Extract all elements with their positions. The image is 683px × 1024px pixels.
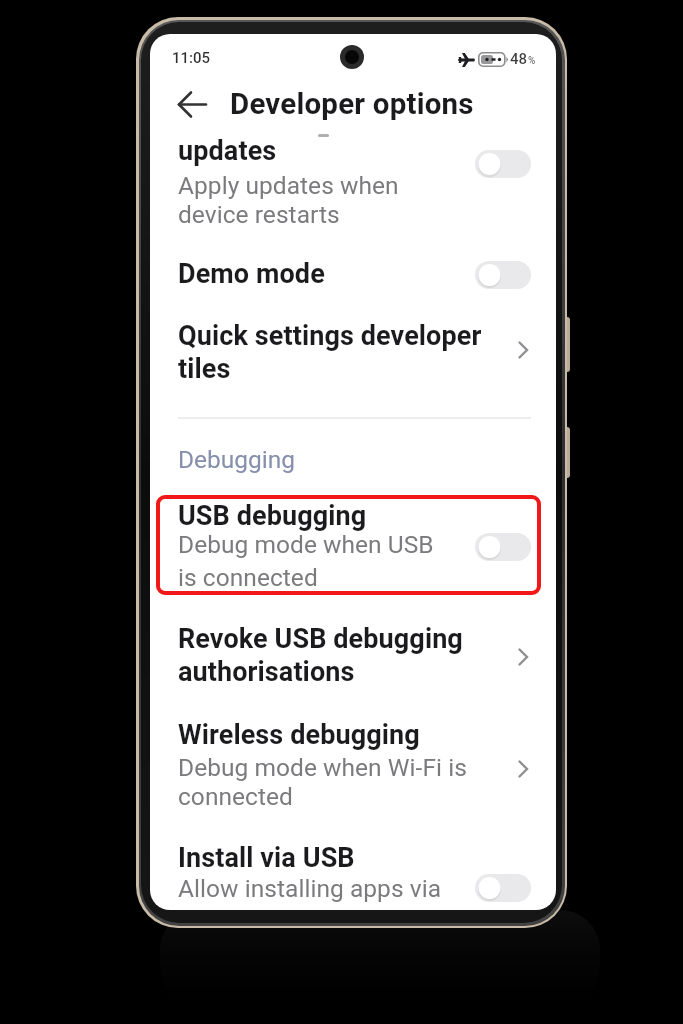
button[interactable]	[475, 150, 531, 178]
staticText: Debug mode when USB	[178, 530, 434, 559]
staticText: Wireless debugging	[178, 719, 420, 751]
button[interactable]: Wireless debugging	[150, 718, 556, 828]
button[interactable]	[170, 86, 214, 124]
staticText: updates	[178, 135, 277, 167]
staticText: USB debugging	[178, 500, 367, 532]
staticText: %	[528, 55, 536, 67]
staticText: tiles	[178, 353, 231, 385]
button[interactable]	[475, 261, 531, 289]
staticText: Revoke USB debugging	[178, 623, 463, 655]
button[interactable]: Quick settings developer	[150, 318, 556, 424]
staticText: Demo mode	[178, 258, 325, 290]
button[interactable]: USB debugging	[150, 500, 556, 602]
staticText: Debugging	[178, 445, 296, 474]
staticText: 48	[510, 50, 528, 68]
button[interactable]: Install via USB	[150, 842, 556, 910]
staticText: Apply updates when	[178, 171, 399, 200]
staticText: Install via USB	[178, 842, 355, 874]
staticText: 11:05	[172, 49, 211, 67]
staticText: Developer options	[230, 87, 474, 122]
staticText: authorisations	[178, 656, 355, 688]
staticText: Quick settings developer	[178, 320, 482, 352]
button[interactable]: updates	[150, 132, 556, 246]
staticText: Debug mode when Wi-Fi is	[178, 753, 467, 782]
staticText: is connected	[178, 563, 318, 592]
button[interactable]: Revoke USB debugging	[150, 623, 556, 705]
staticText: Allow installing apps via	[178, 874, 442, 903]
staticText: connected	[178, 782, 293, 811]
staticText: device restarts	[178, 200, 340, 229]
button[interactable]: Demo mode	[150, 256, 556, 314]
button[interactable]	[475, 874, 531, 902]
button[interactable]	[475, 533, 531, 561]
